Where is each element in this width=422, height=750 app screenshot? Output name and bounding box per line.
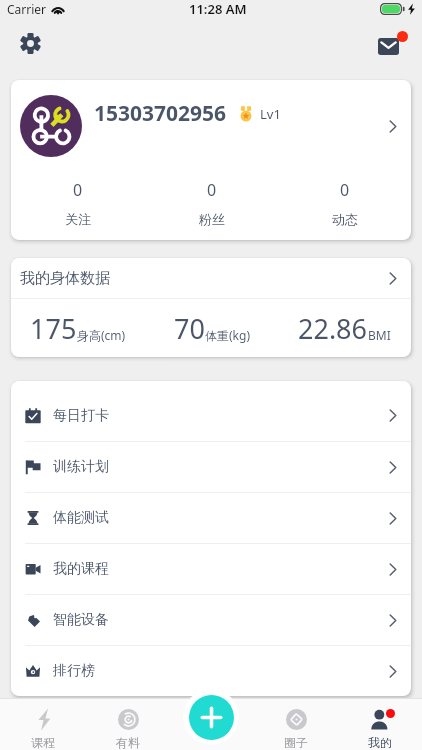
- staticText: 11:28 AM: [189, 0, 247, 18]
- staticText: 课程: [31, 735, 55, 750]
- button[interactable]: 0: [11, 172, 145, 227]
- staticText: 15303702956: [94, 99, 227, 128]
- staticText: 动态: [332, 211, 358, 227]
- staticText: 粉丝: [199, 211, 225, 227]
- staticText: Lv1: [260, 105, 281, 123]
- button[interactable]: Add: [189, 695, 234, 740]
- staticText: BMI: [368, 327, 391, 343]
- staticText: 我的课程: [53, 560, 109, 578]
- button[interactable]: 智能设备: [11, 595, 411, 645]
- button[interactable]: 每日打卡: [11, 381, 411, 441]
- staticText: 0: [73, 179, 83, 201]
- staticText: 我的身体数据: [20, 269, 110, 288]
- button[interactable]: 排行榜: [11, 646, 411, 696]
- staticText: 每日打卡: [53, 407, 109, 425]
- staticText: 关注: [65, 211, 91, 227]
- button[interactable]: 0: [278, 172, 411, 227]
- button[interactable]: 我的身体数据: [11, 258, 411, 298]
- staticText: 排行榜: [53, 662, 95, 680]
- button[interactable]: 课程: [0, 699, 85, 750]
- staticText: 体能测试: [53, 509, 109, 527]
- staticText: 70: [174, 310, 205, 347]
- staticText: 训练计划: [53, 458, 109, 476]
- staticText: 体重(kg): [205, 327, 250, 343]
- button[interactable]: 体能测试: [11, 493, 411, 543]
- button[interactable]: 圈子: [254, 699, 338, 750]
- button[interactable]: 我的课程: [11, 544, 411, 594]
- staticText: 圈子: [284, 735, 308, 750]
- staticText: 175: [30, 310, 77, 347]
- staticText: 0: [340, 179, 350, 201]
- button[interactable]: 0: [145, 172, 278, 227]
- staticText: 有料: [116, 735, 140, 750]
- staticText: 智能设备: [53, 611, 109, 629]
- button[interactable]: 有料: [85, 699, 170, 750]
- staticText: 22.86: [298, 310, 368, 347]
- button[interactable]: 训练计划: [11, 442, 411, 492]
- staticText: 身高(cm): [77, 327, 126, 343]
- button[interactable]: Settings: [11, 24, 49, 62]
- button[interactable]: Messages: [374, 24, 412, 62]
- button[interactable]: 我的: [338, 699, 422, 750]
- staticText: 0: [207, 179, 217, 201]
- staticText: Carrier: [7, 1, 47, 17]
- staticText: 我的: [368, 735, 392, 750]
- button[interactable]: 15303702956: [11, 80, 411, 172]
